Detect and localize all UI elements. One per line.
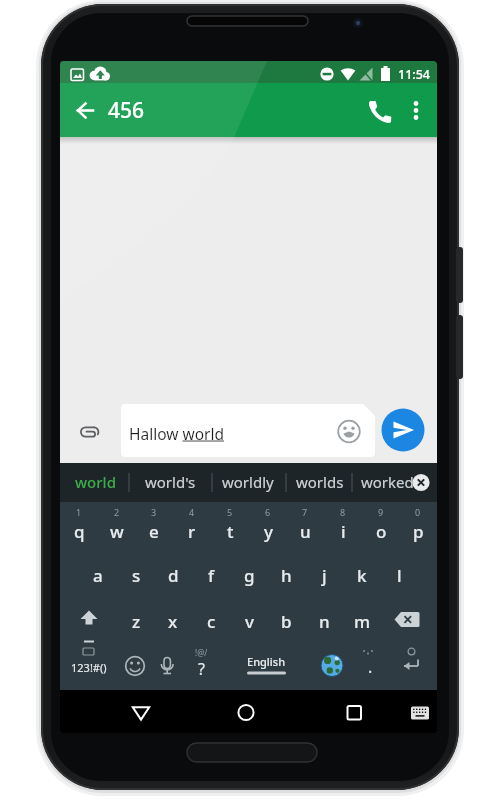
button[interactable]: f xyxy=(192,560,230,590)
button[interactable] xyxy=(121,404,375,457)
button[interactable]: b xyxy=(267,606,305,636)
button[interactable] xyxy=(392,604,430,636)
button[interactable]: 123!#() xyxy=(62,653,116,681)
staticText: 0 xyxy=(415,506,421,518)
button[interactable]: d xyxy=(154,560,192,590)
button[interactable]: e xyxy=(135,516,173,546)
staticText: u xyxy=(300,520,311,543)
staticText: 9 xyxy=(378,506,384,518)
button[interactable]: a xyxy=(79,560,117,590)
button[interactable] xyxy=(410,471,432,493)
button[interactable]: worked xyxy=(361,468,413,496)
button[interactable]: n xyxy=(305,606,343,636)
staticText: Hallow world xyxy=(129,423,224,444)
button[interactable]: world's xyxy=(138,468,202,496)
staticText: 11:54 xyxy=(398,66,431,83)
button[interactable] xyxy=(333,695,375,731)
staticText: 8 xyxy=(340,506,346,518)
staticText: q xyxy=(74,520,85,543)
button[interactable] xyxy=(75,418,103,446)
staticText: d xyxy=(168,564,179,587)
staticText: English xyxy=(247,654,286,669)
staticText: c xyxy=(207,610,216,633)
staticText: !@/ xyxy=(195,647,208,658)
button[interactable]: English xyxy=(236,649,296,673)
button[interactable] xyxy=(72,97,98,123)
button[interactable]: h xyxy=(267,560,305,590)
button[interactable] xyxy=(404,697,436,729)
staticText: r xyxy=(188,520,196,543)
button[interactable]: g xyxy=(230,560,268,590)
staticText: 123!#() xyxy=(71,660,107,675)
button[interactable]: w xyxy=(98,516,136,546)
button[interactable] xyxy=(396,651,428,681)
button[interactable]: worlds xyxy=(294,468,346,496)
staticText: l xyxy=(397,564,402,587)
button[interactable]: s xyxy=(117,560,155,590)
button[interactable] xyxy=(318,651,348,681)
button[interactable]: l xyxy=(380,560,418,590)
button[interactable]: k xyxy=(343,560,381,590)
staticText: 1 xyxy=(76,506,82,518)
staticText: s xyxy=(132,564,141,587)
staticText: i xyxy=(341,520,346,543)
staticText: v xyxy=(245,610,254,633)
staticText: o xyxy=(376,520,387,543)
staticText: y xyxy=(264,520,273,543)
staticText: 2 xyxy=(114,506,120,518)
staticText: h xyxy=(281,564,292,587)
button[interactable]: o xyxy=(362,516,400,546)
staticText: world's xyxy=(145,472,196,492)
staticText: ? xyxy=(198,658,205,680)
staticText: 4 xyxy=(189,506,195,518)
staticText: 456 xyxy=(108,96,145,125)
button[interactable] xyxy=(381,408,425,452)
staticText: world xyxy=(75,472,116,492)
button[interactable] xyxy=(120,695,162,731)
staticText: 5 xyxy=(227,506,233,518)
staticText: a xyxy=(93,564,103,587)
button[interactable] xyxy=(225,695,267,731)
staticText: f xyxy=(208,564,215,587)
button[interactable]: world xyxy=(70,468,120,496)
staticText: t xyxy=(227,520,234,543)
button[interactable]: m xyxy=(343,606,381,636)
staticText: worldly xyxy=(222,472,274,492)
button[interactable] xyxy=(365,98,391,124)
button[interactable]: j xyxy=(305,560,343,590)
button[interactable]: x xyxy=(154,606,192,636)
staticText: worked xyxy=(361,472,413,492)
button[interactable] xyxy=(70,604,108,636)
button[interactable] xyxy=(120,651,150,681)
staticText: 3 xyxy=(151,506,157,518)
button[interactable]: u xyxy=(286,516,324,546)
staticText: w xyxy=(110,520,124,543)
button[interactable] xyxy=(337,418,363,444)
staticText: x xyxy=(168,610,178,633)
button[interactable]: v xyxy=(230,606,268,636)
button[interactable]: q xyxy=(60,516,98,546)
staticText: g xyxy=(244,564,255,587)
staticText: z xyxy=(132,610,141,633)
button[interactable] xyxy=(406,98,428,124)
button[interactable]: p xyxy=(399,516,437,546)
button[interactable]: c xyxy=(192,606,230,636)
button[interactable]: y xyxy=(249,516,287,546)
button[interactable]: ? xyxy=(186,655,216,683)
button[interactable] xyxy=(222,649,310,683)
staticText: m xyxy=(354,610,371,633)
button[interactable]: r xyxy=(173,516,211,546)
button[interactable]: z xyxy=(117,606,155,636)
button[interactable]: t xyxy=(211,516,249,546)
staticText: e xyxy=(149,520,159,543)
staticText: . xyxy=(368,656,373,678)
button[interactable] xyxy=(152,651,182,681)
staticText: j xyxy=(322,564,327,587)
staticText: p xyxy=(413,520,424,543)
button[interactable]: worldly xyxy=(219,468,277,496)
staticText: k xyxy=(357,564,367,587)
staticText: 6 xyxy=(265,506,271,518)
button[interactable]: . xyxy=(355,653,385,681)
staticText: 7 xyxy=(302,506,308,518)
button[interactable]: i xyxy=(324,516,362,546)
